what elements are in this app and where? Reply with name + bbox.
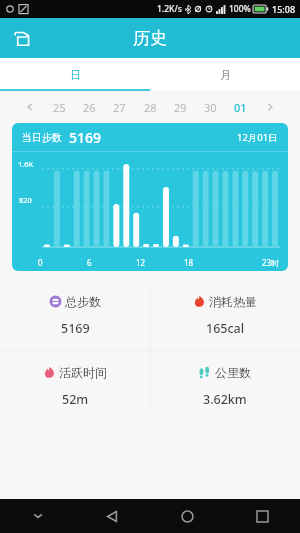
staticText: 12 — [136, 257, 146, 268]
staticText: 1.6K — [18, 159, 34, 169]
staticText: 25 — [53, 100, 66, 115]
staticText: 29 — [174, 100, 187, 115]
button[interactable]: 活跃时间 — [0, 351, 150, 421]
staticText: 18 — [184, 257, 194, 268]
staticText: 5169 — [61, 320, 90, 337]
staticText: 1.2K/s — [157, 3, 182, 15]
staticText: 6 — [87, 257, 92, 268]
staticText: 52m — [62, 391, 89, 408]
button[interactable]: 30 — [202, 97, 219, 118]
staticText: 165cal — [206, 320, 245, 337]
staticText: 消耗热量 — [209, 294, 257, 309]
button[interactable]: Home — [150, 499, 225, 533]
staticText: 100% — [229, 3, 251, 15]
staticText: 活跃时间 — [59, 365, 107, 380]
button[interactable]: Previous — [22, 99, 38, 115]
staticText: 5169 — [69, 128, 102, 147]
staticText: 历史 — [133, 28, 167, 49]
button[interactable]: Back — [8, 25, 34, 51]
button[interactable]: 29 — [172, 97, 189, 118]
staticText: 月 — [220, 68, 231, 82]
staticText: 28 — [144, 100, 157, 115]
staticText: 当日步数 — [22, 131, 62, 144]
button[interactable]: 总步数 — [0, 281, 150, 350]
button[interactable]: 当日步数 — [12, 123, 288, 271]
staticText: 01 — [234, 100, 247, 115]
button[interactable]: 消耗热量 — [150, 281, 300, 350]
staticText: 820 — [19, 195, 32, 205]
staticText: 公里数 — [215, 365, 251, 380]
button[interactable]: Recents — [225, 499, 300, 533]
button[interactable]: 26 — [81, 97, 98, 118]
staticText: 27 — [113, 100, 126, 115]
button[interactable]: 27 — [111, 97, 128, 118]
staticText: 23时 — [262, 257, 280, 268]
button[interactable]: 01 — [232, 97, 249, 118]
staticText: 0 — [38, 257, 43, 268]
staticText: 3.62km — [203, 391, 247, 408]
button[interactable]: Hide — [0, 499, 75, 533]
staticText: 日 — [70, 68, 81, 82]
staticText: 30 — [204, 100, 217, 115]
button[interactable]: Back — [75, 499, 150, 533]
button[interactable]: 公里数 — [150, 351, 300, 421]
staticText: 总步数 — [65, 294, 101, 309]
staticText: 12月01日 — [237, 131, 278, 144]
staticText: 26 — [83, 100, 96, 115]
button[interactable]: 月 — [150, 58, 300, 91]
button[interactable]: Next — [262, 99, 278, 115]
button[interactable]: 日 — [0, 58, 150, 91]
staticText: 15:08 — [272, 3, 296, 15]
button[interactable]: 25 — [51, 97, 68, 118]
button[interactable]: 28 — [142, 97, 159, 118]
